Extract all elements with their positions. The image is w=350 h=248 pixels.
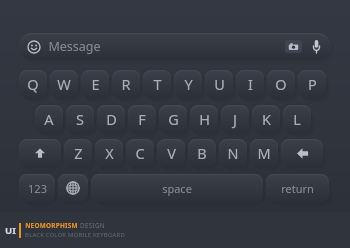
button[interactable]: Shift: [19, 139, 61, 167]
staticText: X: [105, 143, 114, 163]
button[interactable]: space: [91, 174, 263, 202]
button[interactable]: X: [95, 139, 123, 167]
staticText: Q: [27, 74, 39, 94]
staticText: F: [138, 109, 146, 129]
staticText: J: [233, 109, 237, 129]
staticText: R: [121, 74, 131, 94]
staticText: V: [167, 143, 176, 163]
button[interactable]: R: [112, 70, 140, 98]
staticText: BLACK COLOR MOBILE KEYBOARD: [25, 231, 125, 239]
button[interactable]: A: [35, 105, 63, 133]
staticText: W: [57, 74, 71, 94]
button[interactable]: B: [188, 139, 216, 167]
button[interactable]: F: [128, 105, 156, 133]
button[interactable]: G: [159, 105, 187, 133]
button[interactable]: Y: [174, 70, 202, 98]
button[interactable]: Voice input: [310, 38, 322, 55]
staticText: Message: [48, 38, 101, 55]
staticText: I: [248, 74, 253, 94]
button[interactable]: C: [126, 139, 154, 167]
staticText: space: [162, 181, 192, 196]
staticText: Y: [184, 74, 193, 94]
button[interactable]: O: [267, 70, 295, 98]
staticText: DESIGN: [80, 221, 105, 230]
staticText: M: [257, 143, 271, 163]
button[interactable]: 123: [19, 174, 55, 202]
button[interactable]: K: [252, 105, 280, 133]
staticText: H: [199, 109, 210, 129]
staticText: U: [214, 74, 225, 94]
staticText: NEOMORPHISM: [25, 221, 78, 230]
button[interactable]: I: [236, 70, 264, 98]
button[interactable]: V: [157, 139, 185, 167]
staticText: C: [135, 143, 145, 163]
staticText: Z: [74, 143, 83, 163]
button[interactable]: Camera: [285, 40, 302, 53]
staticText: B: [197, 143, 207, 163]
staticText: UI: [5, 224, 16, 237]
staticText: G: [168, 109, 179, 129]
button[interactable]: Change keyboard language: [58, 174, 88, 202]
button[interactable]: Q: [19, 70, 47, 98]
staticText: P: [308, 74, 317, 94]
button[interactable]: return: [266, 174, 329, 202]
button[interactable]: D: [97, 105, 125, 133]
button[interactable]: U: [205, 70, 233, 98]
button[interactable]: P: [298, 70, 326, 98]
button[interactable]: M: [250, 139, 278, 167]
button[interactable]: Message: [19, 33, 331, 60]
button[interactable]: T: [143, 70, 171, 98]
button[interactable]: N: [219, 139, 247, 167]
staticText: D: [106, 109, 117, 129]
staticText: O: [275, 74, 287, 94]
staticText: T: [153, 74, 162, 94]
button[interactable]: Z: [64, 139, 92, 167]
staticText: N: [227, 143, 239, 163]
button[interactable]: L: [283, 105, 311, 133]
staticText: E: [91, 74, 100, 94]
staticText: return: [281, 181, 314, 196]
staticText: L: [293, 109, 301, 129]
button[interactable]: H: [190, 105, 218, 133]
button[interactable]: J: [221, 105, 249, 133]
staticText: K: [262, 109, 271, 129]
button[interactable]: W: [50, 70, 78, 98]
button[interactable]: S: [66, 105, 94, 133]
staticText: 123: [28, 181, 47, 196]
staticText: A: [44, 109, 54, 129]
button[interactable]: E: [81, 70, 109, 98]
button[interactable]: Backspace: [281, 139, 323, 167]
staticText: S: [76, 109, 84, 129]
